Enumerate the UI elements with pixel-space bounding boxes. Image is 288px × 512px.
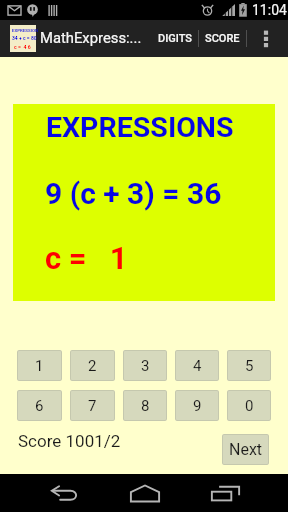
- staticText: SCORE: [205, 32, 240, 45]
- button[interactable]: Back: [43, 478, 87, 508]
- staticText: 9 (c + 3) = 36: [45, 176, 222, 211]
- staticText: c = 1: [45, 240, 128, 276]
- button[interactable]: Home: [123, 478, 167, 508]
- staticText: EXPRESSIONS: [46, 111, 234, 144]
- staticText: 2: [88, 357, 97, 375]
- button[interactable]: DIGITS: [151, 20, 199, 57]
- button[interactable]: 5: [227, 350, 271, 381]
- staticText: 7: [88, 397, 97, 415]
- button[interactable]: 4: [175, 350, 219, 381]
- staticText: c = 4 6: [14, 44, 31, 50]
- button[interactable]: 2: [70, 350, 115, 381]
- button[interactable]: 1: [17, 350, 62, 381]
- staticText: MathExpress:...: [40, 29, 142, 46]
- button[interactable]: Next: [222, 434, 269, 465]
- staticText: 3: [141, 357, 150, 375]
- staticText: 11:04: [252, 2, 287, 18]
- staticText: 1: [35, 357, 44, 375]
- staticText: EXPRESSIONS: [12, 28, 38, 33]
- staticText: 6: [35, 397, 44, 415]
- button[interactable]: More options: [245, 20, 286, 57]
- staticText: 8: [141, 397, 150, 415]
- staticText: Score 1001/2: [18, 431, 121, 451]
- button[interactable]: SCORE: [199, 20, 245, 57]
- staticText: 5: [245, 357, 254, 375]
- button[interactable]: 0: [227, 390, 271, 421]
- staticText: 0: [245, 397, 254, 415]
- staticText: Next: [229, 440, 263, 459]
- button[interactable]: 8: [123, 390, 167, 421]
- staticText: DIGITS: [158, 32, 193, 45]
- staticText: 9: [193, 397, 202, 415]
- button[interactable]: 3: [123, 350, 167, 381]
- staticText: 34 + c = 80: [12, 35, 37, 41]
- button[interactable]: 7: [70, 390, 115, 421]
- button[interactable]: 9: [175, 390, 219, 421]
- button[interactable]: 6: [17, 390, 62, 421]
- staticText: 4: [193, 357, 202, 375]
- button[interactable]: Recent apps: [203, 478, 247, 508]
